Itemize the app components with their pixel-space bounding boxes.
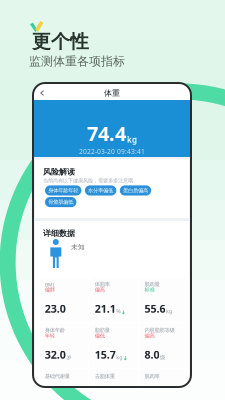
staticText: 脂肪量 <box>95 327 110 334</box>
button[interactable]: 体脂率 <box>90 277 138 322</box>
button[interactable]: 返回 <box>33 85 49 98</box>
button[interactable]: BMI <box>40 277 88 322</box>
staticText: 骨骼肌偏低 <box>48 199 73 205</box>
staticText: 74.4 <box>87 120 126 147</box>
staticText: 32.0 <box>45 347 66 362</box>
button[interactable]: 脂肪量 <box>90 323 138 368</box>
staticText: 年轻 <box>45 332 55 339</box>
button[interactable]: 身体年龄 <box>40 323 88 368</box>
staticText: 水分率偏低 <box>88 187 113 194</box>
button[interactable]: 水分率偏低 <box>85 185 116 196</box>
staticText: 当前尚有以下健康风险，需要多多注意哦 <box>43 177 133 184</box>
button[interactable]: 蛋白质偏高 <box>120 185 151 196</box>
button[interactable]: 骨骼肌偏低 <box>45 197 76 207</box>
button[interactable]: 去脂体重 <box>90 369 138 400</box>
staticText: 肌肉量 <box>144 281 159 288</box>
staticText: 身体年龄 <box>45 327 65 334</box>
staticText: 15.7 <box>95 347 116 362</box>
button[interactable]: 内脏脂肪等级 <box>139 323 188 368</box>
staticText: 未知 <box>71 243 85 251</box>
button[interactable]: 基础代谢量 <box>40 369 88 400</box>
staticText: % <box>116 308 120 315</box>
button[interactable]: 身体年龄年轻 <box>45 185 81 196</box>
staticText: 21.1 <box>95 301 116 316</box>
staticText: kg <box>127 134 137 145</box>
staticText: 偏高 <box>95 286 105 293</box>
staticText: 体重 <box>104 88 120 98</box>
staticText: 8.0 <box>144 347 159 362</box>
staticText: 55.6 <box>144 301 165 316</box>
staticText: 详细数据 <box>43 228 75 238</box>
staticText: 偏低 <box>95 332 105 339</box>
staticText: 蛋白质偏高 <box>123 187 148 194</box>
staticText: 肌肉率 <box>144 373 159 380</box>
staticText: 监测体重各项指标 <box>29 54 125 69</box>
staticText: kg <box>166 308 172 315</box>
staticText: 基础代谢量 <box>45 373 70 380</box>
staticText: BMI <box>45 281 55 288</box>
staticText: 体脂率 <box>95 281 110 288</box>
staticText: kg <box>116 354 122 361</box>
button[interactable]: 肌肉率 <box>139 369 188 400</box>
staticText: 23.0 <box>45 301 66 316</box>
staticText: 身体年龄年轻 <box>48 187 78 194</box>
staticText: 偏高 <box>144 332 154 339</box>
staticText: 去脂体重 <box>95 373 115 380</box>
staticText: 更个性 <box>32 30 89 53</box>
staticText: 标准 <box>144 286 154 293</box>
staticText: 风险解读 <box>43 167 75 177</box>
staticText: 2022-03-20 09:43:41 <box>79 147 145 156</box>
staticText: 岁 <box>66 354 71 361</box>
button[interactable]: 肌肉量 <box>139 277 188 322</box>
staticText: 级 <box>160 354 165 361</box>
staticText: 内脏脂肪等级 <box>144 327 174 334</box>
staticText: 偏胖 <box>45 286 55 293</box>
